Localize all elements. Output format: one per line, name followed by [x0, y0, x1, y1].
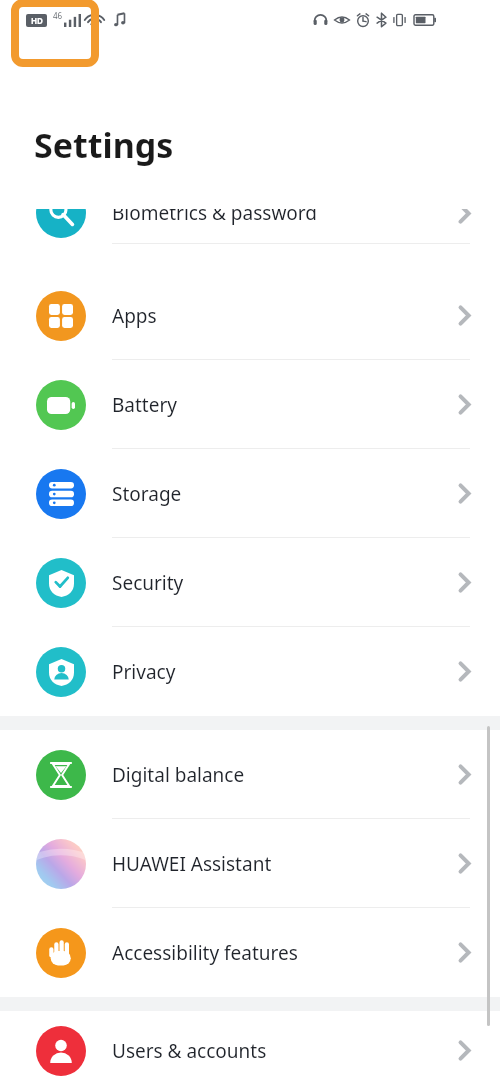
staticText: Security [112, 570, 459, 596]
button[interactable]: Battery [0, 360, 500, 449]
other: Open [459, 662, 470, 681]
staticText: Biometrics & password [112, 209, 459, 226]
button[interactable]: Accessibility features [0, 908, 500, 997]
staticText: Settings [34, 122, 174, 168]
button[interactable]: Storage [0, 449, 500, 538]
other: Open [459, 765, 470, 784]
other: Open [459, 484, 470, 503]
button[interactable]: HUAWEI Assistant [0, 819, 500, 908]
staticText: Storage [112, 481, 459, 507]
staticText: HD [31, 15, 43, 26]
other: Open [459, 1041, 470, 1060]
staticText: Digital balance [112, 762, 459, 788]
button[interactable]: Digital balance [0, 730, 500, 819]
other: Open [459, 395, 470, 414]
staticText: Apps [112, 303, 459, 329]
button[interactable]: Security [0, 538, 500, 627]
other: Open [459, 854, 470, 873]
staticText: 46 [53, 10, 63, 21]
other: Open [459, 306, 470, 325]
staticText: Privacy [112, 659, 459, 685]
button[interactable]: Apps [0, 271, 500, 360]
staticText: Battery [112, 392, 459, 418]
button[interactable]: Biometrics & password [0, 209, 500, 244]
other: Open [459, 209, 470, 223]
button[interactable]: Users & accounts [0, 1011, 500, 1090]
staticText: Users & accounts [112, 1038, 459, 1064]
button[interactable]: Privacy [0, 627, 500, 716]
other: Open [459, 943, 470, 962]
staticText: Accessibility features [112, 940, 459, 966]
other: Open [459, 573, 470, 592]
staticText: HUAWEI Assistant [112, 851, 459, 877]
